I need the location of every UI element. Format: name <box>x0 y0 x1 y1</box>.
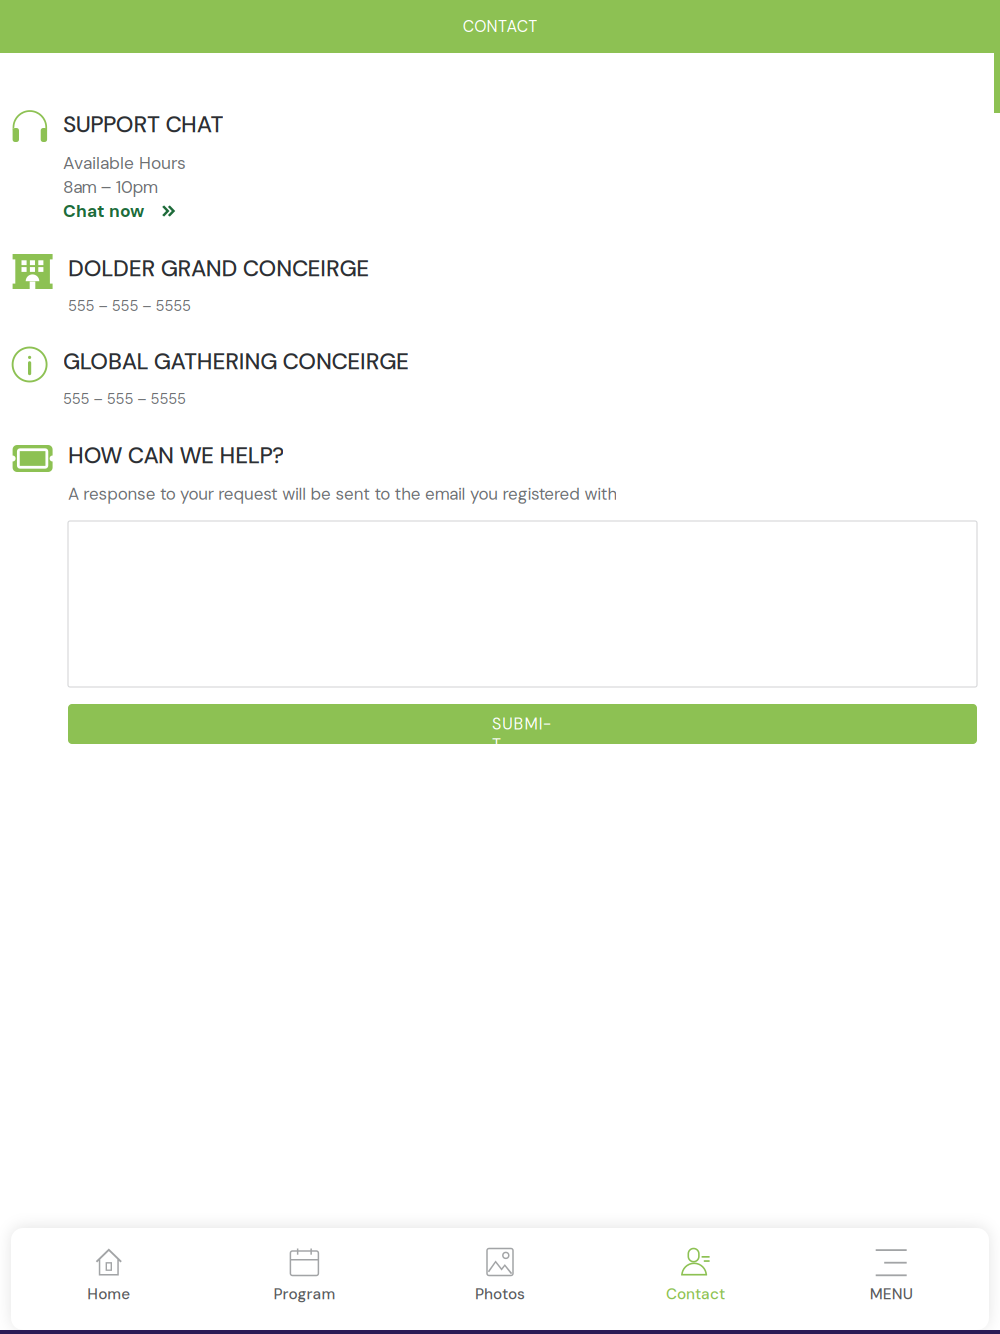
staticText: Program <box>273 1284 335 1304</box>
staticText: 555 – 555 – 5555 <box>63 389 186 409</box>
button[interactable]: 555 – 555 – 5555 <box>63 389 186 409</box>
button[interactable]: MENU <box>793 1228 989 1330</box>
staticText: SUBMIT <box>492 714 553 734</box>
button[interactable]: Program <box>207 1228 402 1330</box>
button[interactable]: Contact <box>598 1228 793 1330</box>
staticText: MENU <box>870 1284 913 1304</box>
button[interactable]: SUBMIT <box>68 704 977 744</box>
button[interactable]: Chat now <box>63 199 175 223</box>
staticText: HOW CAN WE HELP? <box>68 441 284 470</box>
staticText: Photos <box>475 1284 525 1304</box>
button[interactable]: Photos <box>402 1228 598 1330</box>
staticText: 555 – 555 – 5555 <box>68 296 191 316</box>
staticText: Available Hours <box>63 152 186 174</box>
staticText: GLOBAL GATHERING CONCEIRGE <box>63 347 409 376</box>
staticText: Contact <box>666 1284 725 1304</box>
staticText: A response to your request will be sent … <box>68 483 617 505</box>
staticText: 8am – 10pm <box>63 176 158 198</box>
staticText: SUPPORT CHAT <box>63 110 223 139</box>
staticText: Home <box>87 1284 130 1304</box>
staticText: Chat now <box>63 200 144 222</box>
staticText: DOLDER GRAND CONCEIRGE <box>68 254 369 283</box>
button[interactable]: Home <box>11 1228 207 1330</box>
button[interactable]: 555 – 555 – 5555 <box>68 296 191 316</box>
staticText: CONTACT <box>463 16 537 37</box>
